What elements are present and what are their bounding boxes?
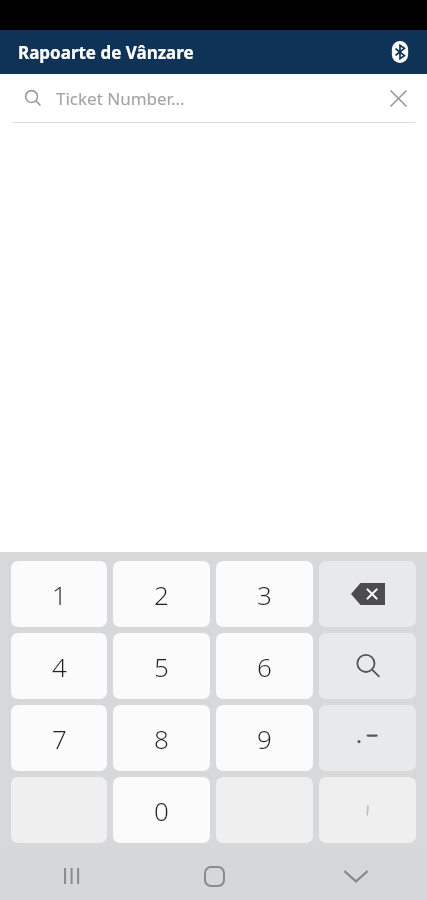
- staticText: 8: [154, 721, 169, 756]
- button[interactable]: Recent apps: [0, 852, 143, 900]
- staticText: 7: [52, 721, 67, 756]
- button[interactable]: Home: [143, 852, 285, 900]
- staticText: 0: [154, 793, 169, 828]
- staticText: 3: [257, 577, 272, 612]
- button[interactable]: 3: [216, 561, 313, 627]
- staticText: Rapoarte de Vânzare: [18, 41, 194, 64]
- button[interactable]: 6: [216, 633, 313, 699]
- button[interactable]: 0: [113, 777, 210, 843]
- staticText: 9: [257, 721, 272, 756]
- button[interactable]: Search: [319, 633, 416, 699]
- button[interactable]: 7: [11, 705, 107, 771]
- button[interactable]: Ticket Number...: [0, 74, 427, 122]
- button[interactable]: 5: [113, 633, 210, 699]
- button[interactable]: 2: [113, 561, 210, 627]
- staticText: Ticket Number...: [56, 87, 185, 110]
- staticText: 5: [154, 649, 169, 684]
- button[interactable]: 4: [11, 633, 107, 699]
- staticText: 2: [154, 577, 169, 612]
- button[interactable]: Clear: [383, 83, 413, 113]
- button[interactable]: 1: [11, 561, 107, 627]
- button[interactable]: Hide keyboard: [285, 852, 427, 900]
- button[interactable]: 9: [216, 705, 313, 771]
- staticText: 1: [52, 577, 67, 612]
- staticText: 6: [257, 649, 272, 684]
- button[interactable]: 8: [113, 705, 210, 771]
- button[interactable]: Backspace: [319, 561, 416, 627]
- staticText: 4: [52, 649, 67, 684]
- button[interactable]: Period and dash: [319, 705, 416, 771]
- button[interactable]: Bluetooth: [383, 35, 417, 69]
